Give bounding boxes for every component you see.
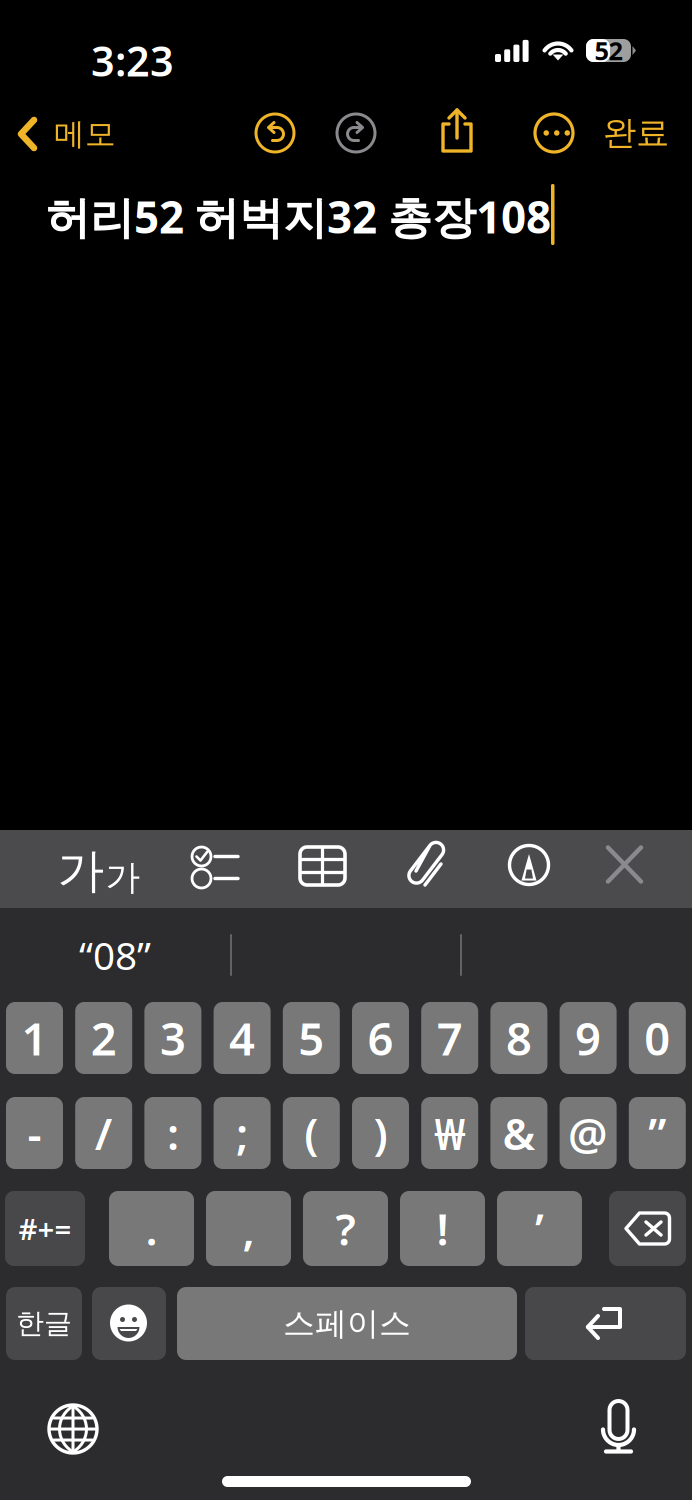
button[interactable]: 0	[629, 1002, 686, 1074]
button[interactable]: 4	[214, 1002, 271, 1074]
staticText: ?	[335, 1199, 355, 1258]
staticText: ;	[236, 1104, 248, 1162]
staticText: !	[436, 1199, 448, 1258]
staticText: ,	[242, 1199, 254, 1258]
button[interactable]: 6	[352, 1002, 409, 1074]
button[interactable]: Table	[292, 839, 352, 899]
button[interactable]: Delete	[609, 1191, 686, 1266]
staticText: ’	[535, 1199, 544, 1258]
button[interactable]: Dictation	[596, 1400, 640, 1454]
button[interactable]: 5	[283, 1002, 340, 1074]
button[interactable]: ;	[214, 1097, 271, 1169]
staticText: 4	[229, 1008, 255, 1068]
button[interactable]: Switch keyboard	[49, 1405, 99, 1455]
staticText: .	[145, 1199, 157, 1258]
staticText: 52	[594, 34, 622, 67]
button[interactable]: /	[75, 1097, 132, 1169]
button[interactable]: .	[109, 1191, 194, 1266]
button[interactable]: ₩	[421, 1097, 478, 1169]
staticText: 1	[21, 1008, 47, 1068]
button[interactable]: Markup	[499, 839, 559, 899]
staticText: &	[502, 1104, 535, 1162]
staticText: “08”	[79, 929, 151, 981]
button[interactable]: @	[560, 1097, 617, 1169]
staticText: 3:23	[91, 33, 174, 88]
button[interactable]: Return	[525, 1287, 686, 1360]
button[interactable]: 9	[560, 1002, 617, 1074]
button[interactable]: 스페이스	[177, 1287, 517, 1360]
button[interactable]: 메모	[17, 104, 147, 164]
button[interactable]: Share	[438, 106, 476, 156]
button[interactable]: 가	[56, 841, 142, 901]
button[interactable]: 1	[6, 1002, 63, 1074]
button[interactable]: 2	[75, 1002, 132, 1074]
button[interactable]: (	[283, 1097, 340, 1169]
button[interactable]: ?	[303, 1191, 388, 1266]
button[interactable]: :	[144, 1097, 201, 1169]
button[interactable]: Undo	[256, 114, 296, 154]
staticText: 한글	[16, 1306, 72, 1341]
staticText: 9	[575, 1008, 601, 1068]
staticText: ₩	[434, 1104, 465, 1162]
staticText: 메모	[54, 115, 116, 153]
staticText: /	[95, 1104, 113, 1162]
staticText: 8	[506, 1008, 532, 1068]
button[interactable]: 완료	[586, 108, 686, 158]
staticText: 가	[57, 842, 104, 900]
staticText: 허리52 허벅지32 총장108	[46, 187, 551, 246]
button[interactable]: Redo	[337, 114, 377, 154]
button[interactable]: 7	[421, 1002, 478, 1074]
button[interactable]: Checklist	[182, 839, 242, 899]
staticText: )	[373, 1104, 387, 1162]
staticText: 가	[105, 856, 140, 899]
button[interactable]: 한글	[6, 1287, 82, 1360]
staticText: (	[304, 1104, 318, 1162]
staticText: 0	[644, 1008, 670, 1068]
button[interactable]: &	[490, 1097, 547, 1169]
staticText: #+=	[18, 1209, 71, 1248]
button[interactable]: #+=	[5, 1191, 85, 1266]
button[interactable]: !	[400, 1191, 485, 1266]
staticText: @	[568, 1104, 608, 1162]
staticText: :	[167, 1104, 179, 1162]
button[interactable]: Emoji	[92, 1287, 166, 1360]
staticText: 완료	[603, 112, 669, 153]
staticText: 5	[298, 1008, 324, 1068]
button[interactable]: “08”	[0, 908, 230, 1002]
staticText: 6	[367, 1008, 393, 1068]
button[interactable]: -	[6, 1097, 63, 1169]
button[interactable]: ’	[497, 1191, 582, 1266]
button[interactable]: More	[535, 114, 575, 154]
staticText: 7	[437, 1008, 463, 1068]
button[interactable]: Attach	[398, 839, 458, 899]
staticText: -	[27, 1104, 41, 1162]
button[interactable]: ,	[206, 1191, 291, 1266]
button[interactable]: Close keyboard	[595, 839, 655, 899]
staticText: 3	[160, 1008, 186, 1068]
button[interactable]: ”	[629, 1097, 686, 1169]
button[interactable]: )	[352, 1097, 409, 1169]
staticText: 2	[91, 1008, 117, 1068]
button[interactable]: 8	[490, 1002, 547, 1074]
staticText: ”	[648, 1104, 666, 1162]
staticText: 스페이스	[283, 1304, 411, 1343]
button[interactable]: 3	[144, 1002, 201, 1074]
